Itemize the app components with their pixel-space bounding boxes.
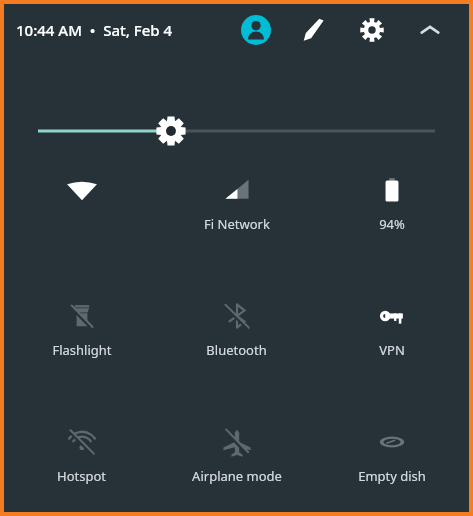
staticText: VPN	[379, 341, 405, 359]
button[interactable]: Bluetooth	[159, 296, 314, 368]
button[interactable]: Settings	[353, 11, 391, 49]
button[interactable]: Flashlight	[4, 296, 159, 368]
staticText: Airplane mode	[192, 467, 282, 485]
staticText: 94%	[379, 215, 405, 233]
staticText: 10:44 AM • Sat, Feb 4	[16, 20, 173, 40]
button[interactable]: Airplane mode	[159, 422, 314, 494]
button[interactable]: Edit	[295, 11, 333, 49]
button[interactable]: Fi Network	[159, 170, 314, 242]
button[interactable]: 94%	[314, 170, 469, 242]
button[interactable]: VPN	[314, 296, 469, 368]
button[interactable]: Hotspot	[4, 422, 159, 494]
staticText: Bluetooth	[206, 341, 267, 359]
button[interactable]: Wi-Fi	[4, 170, 159, 242]
staticText: Flashlight	[52, 341, 112, 359]
button[interactable]: Empty dish	[314, 422, 469, 494]
staticText: Fi Network	[204, 215, 270, 233]
button[interactable]: Collapse	[411, 11, 449, 49]
staticText: Empty dish	[358, 467, 426, 485]
staticText: Hotspot	[57, 467, 106, 485]
button[interactable]: Brightness	[38, 108, 435, 154]
button[interactable]: User	[237, 11, 275, 49]
